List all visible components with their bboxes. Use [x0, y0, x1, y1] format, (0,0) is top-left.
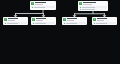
other: Node icon	[32, 18, 35, 21]
other: Node icon	[93, 18, 96, 21]
button[interactable]: Node icon	[30, 1, 56, 10]
other: Node icon	[4, 18, 7, 21]
other: Node icon	[63, 18, 66, 21]
other: Node icon	[31, 2, 34, 5]
button[interactable]: Node icon	[92, 17, 117, 25]
other: Node icon	[79, 2, 82, 5]
button[interactable]: Node icon	[31, 17, 56, 25]
button[interactable]: Node icon	[62, 17, 87, 25]
button[interactable]: Node icon	[78, 1, 108, 11]
button[interactable]: Node icon	[3, 17, 28, 25]
